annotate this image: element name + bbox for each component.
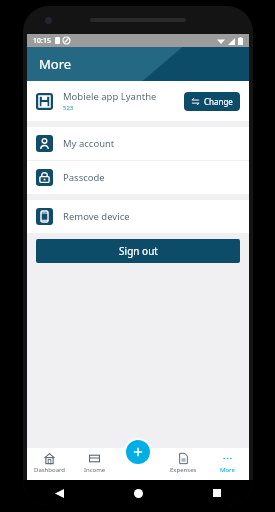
staticText: Dashboard — [34, 466, 66, 474]
staticText: More — [220, 466, 235, 474]
staticText: Sign out — [119, 244, 158, 258]
staticText: Remove device — [63, 210, 130, 223]
staticText: Income — [84, 466, 106, 474]
staticText: 10:15 — [33, 36, 51, 46]
button[interactable]: Income — [72, 448, 117, 480]
button[interactable]: Mobiele app Lyanthe — [27, 81, 249, 121]
staticText: Expenses — [170, 466, 197, 474]
button[interactable]: My account — [27, 127, 249, 160]
button[interactable]: Dashboard — [27, 448, 72, 480]
staticText: Mobiele app Lyanthe — [63, 90, 157, 103]
staticText: 523 — [63, 104, 74, 112]
staticText: More — [39, 55, 72, 73]
button[interactable]: Change — [184, 92, 240, 111]
button[interactable]: Remove device — [27, 200, 249, 233]
button[interactable]: Sign out — [36, 239, 240, 263]
button[interactable]: Add — [126, 440, 150, 464]
staticText: Change — [204, 96, 233, 107]
button[interactable]: More — [205, 448, 249, 480]
staticText: My account — [63, 137, 115, 150]
button[interactable]: Passcode — [27, 161, 249, 194]
button[interactable]: Expenses — [161, 448, 205, 480]
staticText: Passcode — [63, 171, 105, 184]
